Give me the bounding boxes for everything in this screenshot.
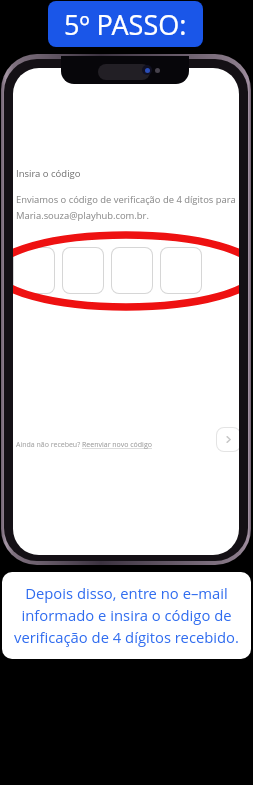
button[interactable]: Continuar bbox=[216, 427, 239, 452]
button[interactable]: Depois disso, entre no e–mail informado … bbox=[2, 572, 251, 659]
button[interactable] bbox=[13, 247, 55, 294]
staticText: Insira o código bbox=[16, 167, 81, 180]
button[interactable] bbox=[62, 247, 104, 294]
button[interactable]: 5º PASSO: bbox=[48, 1, 203, 47]
staticText: Depois disso, entre no e–mail informado … bbox=[11, 583, 242, 648]
button[interactable] bbox=[160, 247, 202, 294]
button[interactable]: Reenviar novo código bbox=[82, 440, 152, 450]
button[interactable] bbox=[111, 247, 153, 294]
staticText: 5º PASSO: bbox=[64, 6, 187, 43]
staticText: Ainda não recebeu? bbox=[16, 440, 82, 450]
staticText: Enviamos o código de verificação de 4 dí… bbox=[16, 193, 239, 221]
